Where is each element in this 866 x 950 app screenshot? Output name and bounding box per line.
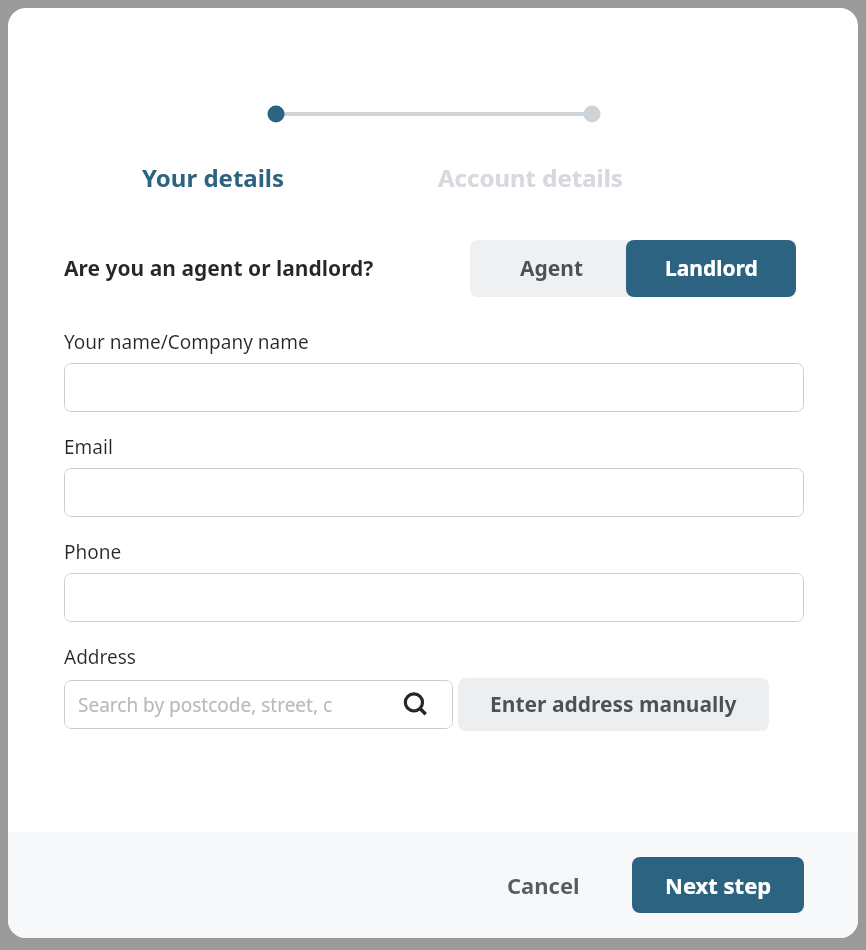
button[interactable] <box>64 573 804 622</box>
staticText: Landlord <box>665 254 758 283</box>
button[interactable]: Account details <box>434 161 627 194</box>
staticText: Email <box>64 434 113 460</box>
staticText: Your name/Company name <box>64 329 309 355</box>
staticText: Address <box>64 644 136 670</box>
staticText: Enter address manually <box>490 690 737 719</box>
staticText: Search by postcode, street, c <box>78 692 333 718</box>
staticText: Next step <box>665 870 772 900</box>
button[interactable]: Search by postcode, street, c <box>64 680 453 729</box>
button[interactable] <box>64 363 804 412</box>
button[interactable] <box>64 468 804 517</box>
staticText: Account details <box>438 161 623 194</box>
staticText: Are you an agent or landlord? <box>64 254 374 283</box>
staticText: Your details <box>142 161 285 194</box>
button[interactable]: Next step <box>632 857 804 913</box>
button[interactable]: Landlord <box>626 240 796 297</box>
staticText: Phone <box>64 539 122 565</box>
staticText: Agent <box>520 254 584 283</box>
staticText: Cancel <box>507 870 580 900</box>
button[interactable]: Cancel <box>485 856 602 914</box>
button[interactable]: Agent <box>470 240 634 297</box>
button[interactable]: Enter address manually <box>458 678 769 731</box>
button[interactable]: Search address <box>396 685 436 725</box>
button[interactable]: Your details <box>138 161 289 194</box>
